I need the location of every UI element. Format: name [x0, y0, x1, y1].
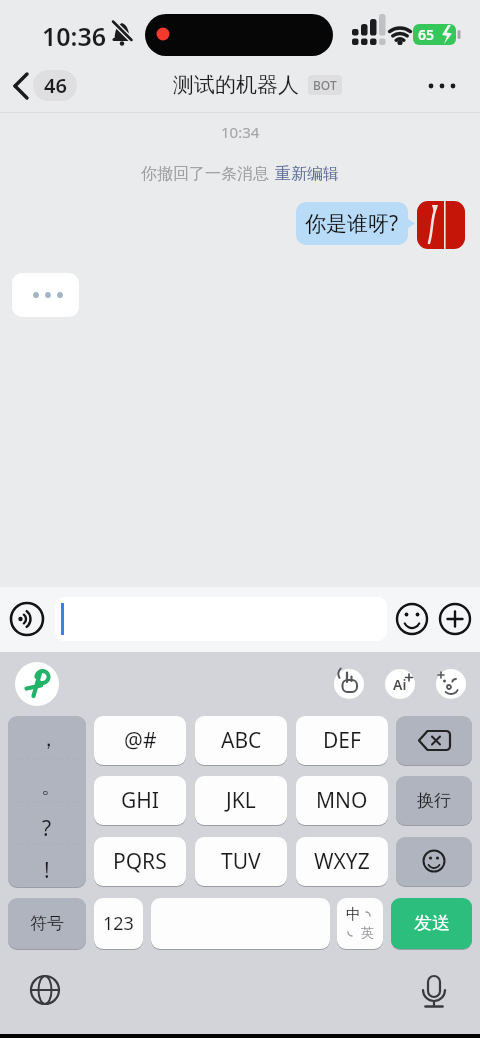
button[interactable]: DEF: [296, 716, 388, 765]
button[interactable]: TUV: [195, 837, 287, 886]
button[interactable]: [28, 973, 62, 1007]
staticText: 123: [103, 911, 134, 936]
staticText: !: [44, 856, 50, 885]
staticText: JKL: [226, 786, 256, 815]
staticText: ?: [42, 814, 52, 843]
button[interactable]: JKL: [195, 776, 287, 825]
staticText: 你是谁呀?: [305, 209, 399, 238]
staticText: 65: [418, 25, 435, 44]
button[interactable]: WXYZ: [296, 837, 388, 886]
staticText: ABC: [221, 726, 262, 755]
staticText: 46: [44, 72, 67, 99]
button[interactable]: 发送: [391, 898, 472, 949]
staticText: GHI: [121, 786, 159, 815]
staticText: TUV: [221, 847, 261, 876]
button[interactable]: 46: [8, 66, 84, 106]
button[interactable]: 符号: [8, 898, 86, 949]
staticText: WXYZ: [314, 847, 370, 876]
button[interactable]: MNO: [296, 776, 388, 825]
button[interactable]: Ai: [385, 669, 415, 699]
staticText: 你撤回了一条消息: [141, 164, 269, 184]
button[interactable]: [12, 273, 79, 317]
staticText: DEF: [323, 726, 361, 755]
staticText: Ai: [393, 675, 407, 694]
button[interactable]: [8, 600, 46, 638]
staticText: 换行: [417, 790, 451, 811]
button[interactable]: 123: [94, 898, 143, 949]
staticText: 测试的机器人: [173, 72, 299, 98]
staticText: 中: [346, 905, 361, 924]
button[interactable]: PQRS: [94, 837, 186, 886]
button[interactable]: [417, 973, 451, 1007]
staticText: @#: [124, 726, 157, 755]
button[interactable]: ，: [8, 716, 86, 887]
staticText: BOT: [313, 77, 337, 93]
staticText: 符号: [30, 913, 64, 934]
staticText: 。: [41, 773, 62, 799]
button[interactable]: [15, 662, 59, 706]
button[interactable]: [420, 66, 468, 106]
staticText: ，: [38, 726, 59, 752]
button[interactable]: [396, 837, 472, 886]
staticText: 发送: [414, 912, 450, 935]
button[interactable]: 重新编辑: [275, 164, 339, 184]
staticText: 英: [361, 924, 374, 940]
button[interactable]: [55, 597, 387, 641]
button[interactable]: [394, 601, 430, 637]
button[interactable]: 中: [337, 898, 383, 949]
staticText: 10:34: [221, 122, 260, 142]
button[interactable]: 你是谁呀?: [296, 202, 408, 245]
button[interactable]: 换行: [396, 776, 472, 825]
button[interactable]: [437, 601, 473, 637]
staticText: 10:36: [42, 19, 107, 53]
button[interactable]: [396, 716, 472, 765]
button[interactable]: [151, 898, 330, 949]
button[interactable]: @#: [94, 716, 186, 765]
button[interactable]: [436, 669, 466, 699]
staticText: MNO: [316, 786, 368, 815]
button[interactable]: [417, 201, 465, 249]
staticText: PQRS: [113, 847, 167, 876]
button[interactable]: GHI: [94, 776, 186, 825]
button[interactable]: [334, 669, 364, 699]
button[interactable]: ABC: [195, 716, 287, 765]
